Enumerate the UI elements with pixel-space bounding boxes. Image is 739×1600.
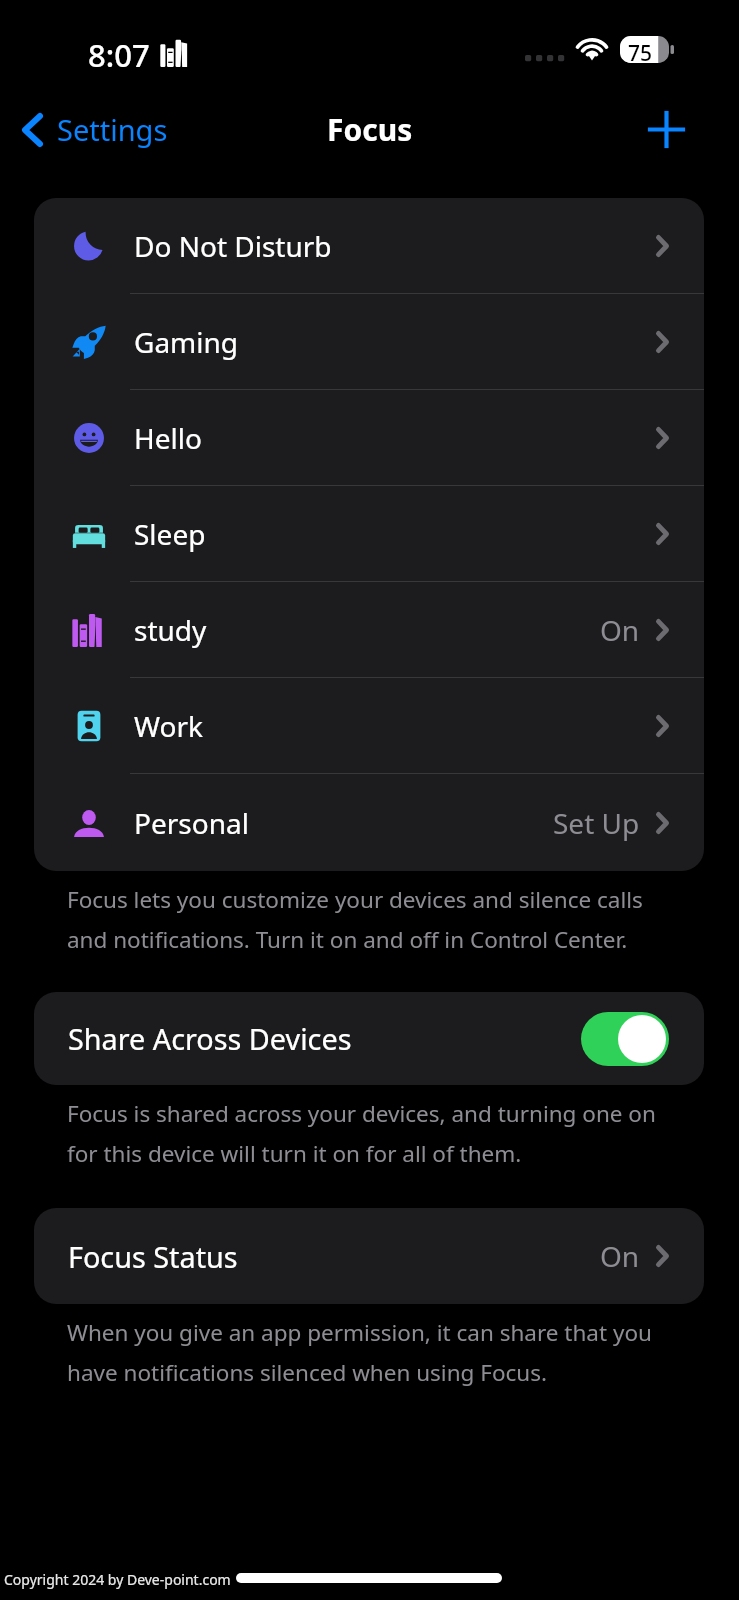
staticText: Focus	[327, 109, 413, 150]
staticText: Share Across Devices	[68, 1019, 352, 1058]
staticText: Settings	[57, 110, 168, 149]
staticText: Focus is shared across your devices, and…	[67, 1098, 684, 1169]
staticText: Focus lets you customize your devices an…	[67, 884, 684, 955]
staticText: When you give an app permission, it can …	[67, 1317, 684, 1388]
button[interactable]: Focus Status	[34, 1208, 704, 1304]
staticText: On	[600, 611, 640, 649]
button[interactable]: Hello	[34, 390, 704, 486]
staticText: Hello	[134, 419, 202, 457]
button[interactable]: Share Across Devices	[34, 992, 704, 1085]
staticText: 8:07	[88, 34, 150, 76]
staticText: Sleep	[134, 515, 206, 553]
other: Share Across Devices	[581, 1012, 669, 1066]
button[interactable]: Do Not Disturb	[34, 198, 704, 294]
button[interactable]: Gaming	[34, 294, 704, 390]
staticText: Do Not Disturb	[134, 227, 332, 265]
staticText: Set Up	[553, 804, 640, 842]
staticText: Work	[134, 707, 203, 745]
staticText: Gaming	[134, 323, 239, 361]
staticText: study	[134, 611, 207, 649]
staticText: On	[600, 1237, 640, 1275]
staticText: Personal	[134, 804, 249, 842]
button[interactable]: study	[34, 582, 704, 678]
staticText: Focus Status	[68, 1237, 238, 1276]
button[interactable]: Personal	[34, 774, 704, 871]
button[interactable]: Settings	[0, 100, 182, 159]
staticText: Copyright 2024 by Deve-point.com	[4, 1570, 231, 1589]
button[interactable]: Work	[34, 678, 704, 774]
button[interactable]: Sleep	[34, 486, 704, 582]
staticText: 75	[628, 39, 653, 68]
button[interactable]: Add Focus	[666, 101, 739, 158]
